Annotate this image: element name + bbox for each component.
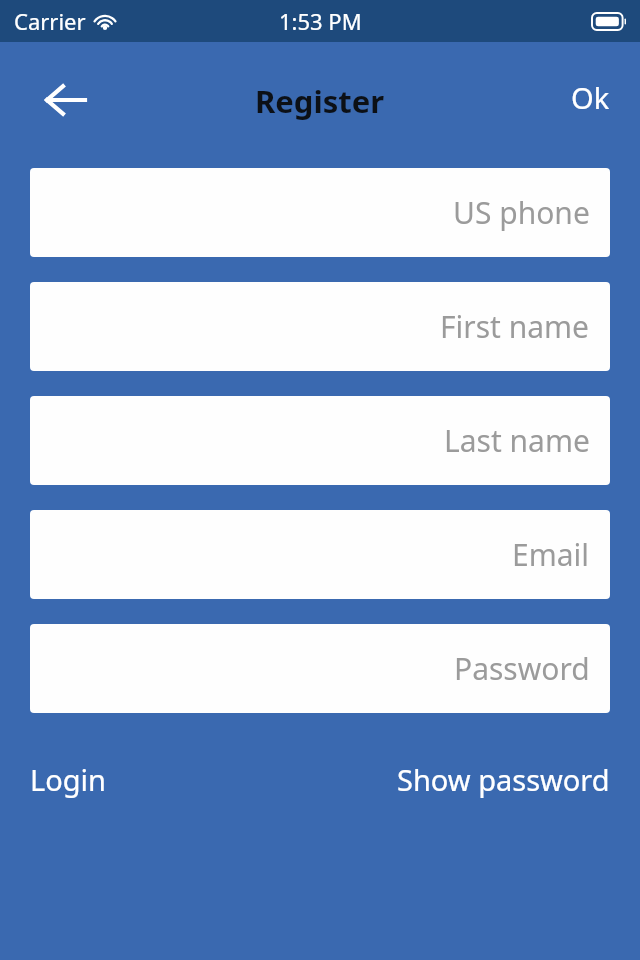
button[interactable]: Ok bbox=[557, 72, 624, 123]
staticText: Last name bbox=[444, 420, 590, 461]
staticText: Show password bbox=[397, 760, 610, 799]
button[interactable]: First name bbox=[30, 282, 610, 371]
button[interactable]: Show password bbox=[383, 750, 624, 809]
staticText: Password bbox=[454, 648, 590, 689]
staticText: Email bbox=[512, 534, 590, 575]
staticText: US phone bbox=[453, 192, 590, 233]
button[interactable]: Last name bbox=[30, 396, 610, 485]
staticText: First name bbox=[440, 306, 590, 347]
button[interactable]: Login bbox=[16, 750, 120, 809]
staticText: 1:53 PM bbox=[279, 6, 362, 36]
staticText: Register bbox=[255, 80, 385, 122]
staticText: Login bbox=[30, 760, 106, 799]
button[interactable]: Password bbox=[30, 624, 610, 713]
button[interactable]: Back bbox=[34, 68, 98, 132]
button[interactable]: US phone bbox=[30, 168, 610, 257]
staticText: Ok bbox=[571, 78, 610, 117]
staticText: Carrier bbox=[14, 6, 86, 36]
button[interactable]: Email bbox=[30, 510, 610, 599]
